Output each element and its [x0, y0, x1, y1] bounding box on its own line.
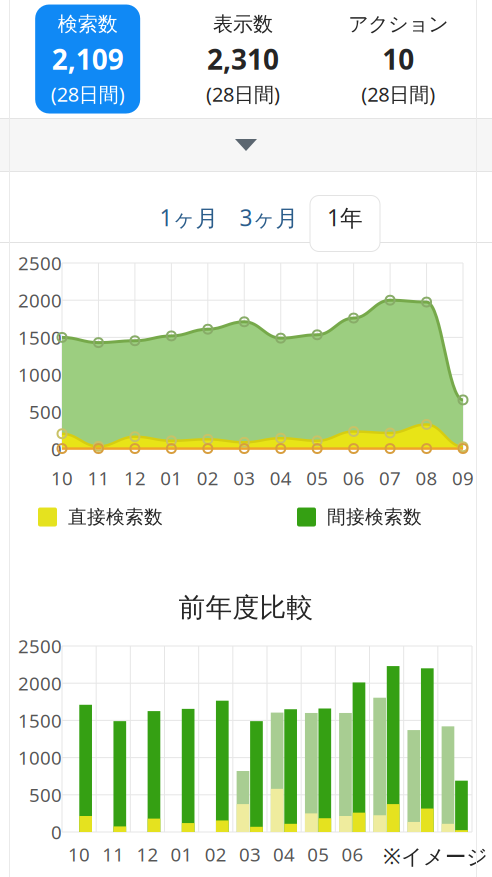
- button[interactable]: 1年: [310, 192, 380, 243]
- staticText: 500: [29, 782, 62, 807]
- staticText: 09: [452, 466, 474, 490]
- staticText: 2000: [18, 288, 62, 313]
- staticText: 検索数: [58, 12, 118, 36]
- staticText: 2500: [18, 251, 62, 275]
- staticText: 12: [136, 842, 158, 867]
- staticText: 2,310: [207, 40, 279, 78]
- staticText: (28日間): [206, 81, 280, 107]
- button[interactable]: 3ヶ月: [234, 192, 304, 243]
- staticText: 0: [51, 820, 62, 844]
- staticText: 表示数: [213, 12, 273, 36]
- staticText: 11: [87, 466, 109, 490]
- staticText: 1年: [327, 202, 363, 232]
- staticText: 2,109: [52, 40, 124, 78]
- staticText: 08: [415, 466, 437, 490]
- staticText: 03: [239, 842, 261, 867]
- staticText: アクション: [348, 12, 448, 36]
- staticText: 07: [379, 466, 401, 490]
- button[interactable]: アクション: [321, 4, 476, 113]
- staticText: 1500: [18, 708, 62, 733]
- staticText: 1ヶ月: [159, 202, 218, 232]
- staticText: (28日間): [361, 81, 435, 107]
- button[interactable]: 表示数: [165, 4, 321, 113]
- staticText: 02: [205, 842, 227, 867]
- button[interactable]: 検索数: [10, 4, 165, 113]
- staticText: 01: [160, 466, 182, 490]
- staticText: ※イメージ: [383, 842, 488, 870]
- staticText: 02: [197, 466, 219, 490]
- staticText: 3ヶ月: [239, 202, 298, 232]
- staticText: 11: [102, 842, 124, 867]
- staticText: 2500: [18, 634, 62, 658]
- staticText: 05: [306, 466, 328, 490]
- staticText: 01: [171, 842, 193, 867]
- staticText: 06: [343, 466, 365, 490]
- staticText: 05: [307, 842, 329, 867]
- staticText: 前年度比較: [178, 591, 313, 624]
- staticText: 直接検索数: [68, 505, 163, 528]
- staticText: 0: [51, 437, 62, 461]
- staticText: 間接検索数: [327, 505, 422, 528]
- staticText: 2000: [18, 671, 62, 696]
- staticText: 1500: [18, 325, 62, 350]
- staticText: 10: [51, 466, 73, 490]
- staticText: 10: [382, 40, 414, 78]
- staticText: 1000: [18, 745, 62, 770]
- button[interactable]: 1ヶ月: [154, 192, 224, 243]
- staticText: 04: [273, 842, 295, 867]
- staticText: 06: [341, 842, 363, 867]
- staticText: 12: [124, 466, 146, 490]
- staticText: 1000: [18, 362, 62, 387]
- button[interactable]: 折りたたむ: [0, 119, 492, 171]
- staticText: 04: [270, 466, 292, 490]
- staticText: 10: [68, 842, 90, 867]
- staticText: 03: [233, 466, 255, 490]
- staticText: (28日間): [51, 81, 125, 107]
- staticText: 500: [29, 399, 62, 424]
